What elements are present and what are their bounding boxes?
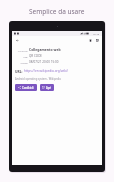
button[interactable]: Edit <box>94 37 100 43</box>
staticText: https://en.wikipedia.org/wiki/Android_(o… <box>24 69 99 73</box>
button[interactable]: Account: <box>15 47 99 52</box>
staticText: Semplice da usare <box>29 7 85 16</box>
staticText: QR CODE <box>29 54 43 58</box>
staticText: Apri <box>46 86 52 90</box>
button[interactable]: Tag: <box>15 54 99 58</box>
staticText: Tag: <box>15 55 28 58</box>
staticText: 16:10 <box>93 32 100 35</box>
staticText: URL: <box>15 69 23 73</box>
button[interactable]: Apri <box>40 84 54 91</box>
staticText: Account: <box>15 49 28 52</box>
button[interactable]: Back <box>14 37 20 43</box>
button[interactable]: Condividi <box>15 84 37 91</box>
button[interactable]: URL: <box>15 69 99 73</box>
button[interactable]: Delete <box>87 37 93 43</box>
staticText: Collegamento web <box>29 47 61 52</box>
staticText: Android operating system - Wikipedia <box>15 77 61 81</box>
staticText: Scade: <box>15 61 28 64</box>
staticText: Condividi <box>22 86 34 90</box>
staticText: 08/07/21 20:00 15:00 <box>29 60 59 64</box>
button[interactable]: Scade: <box>15 60 99 64</box>
